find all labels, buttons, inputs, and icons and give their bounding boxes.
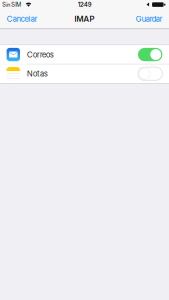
staticText: Cancelar <box>7 14 38 24</box>
staticText: 12:49 <box>78 1 91 8</box>
button[interactable]: Cancelar <box>0 9 44 29</box>
staticText: Correos <box>27 50 54 59</box>
staticText: IMAP <box>74 14 94 24</box>
staticText: Sin SIM <box>2 1 21 8</box>
button[interactable]: Guardar <box>130 9 169 29</box>
button[interactable]: Correos <box>0 45 169 64</box>
staticText: Guardar <box>136 14 163 24</box>
staticText: Notas <box>27 69 48 78</box>
button[interactable]: Notas <box>0 64 169 83</box>
